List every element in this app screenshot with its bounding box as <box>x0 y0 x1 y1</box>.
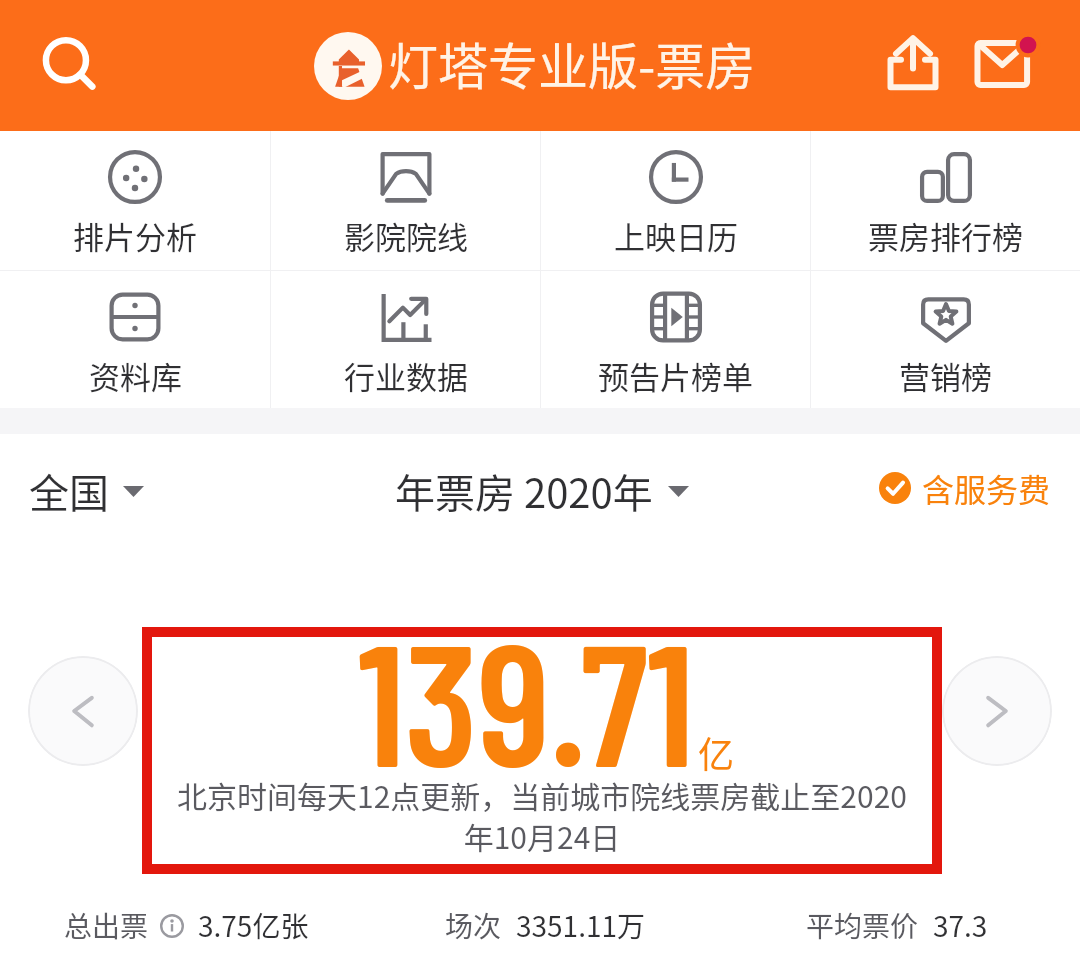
staticText: 3351.11万 <box>516 905 646 946</box>
staticText: 37.3 <box>933 905 988 946</box>
staticText: 行业数据 <box>344 353 468 398</box>
button[interactable]: Search <box>28 24 112 108</box>
button[interactable]: 票房排行榜 <box>811 131 1080 183</box>
button[interactable]: 排片分析 <box>0 131 270 183</box>
staticText: 资料库 <box>89 353 182 398</box>
staticText: 含服务费 <box>922 465 1051 511</box>
staticText: 营销榜 <box>899 353 992 398</box>
button[interactable]: 行业数据 <box>271 271 540 323</box>
button[interactable]: Previous <box>28 656 138 766</box>
staticText: 全国 <box>29 462 109 520</box>
button[interactable]: 影院院线 <box>271 131 540 183</box>
staticText: 平均票价 <box>806 905 919 946</box>
staticText: 票房排行榜 <box>868 213 1023 258</box>
button[interactable]: 场次 <box>445 905 646 946</box>
staticText: 场次 <box>445 905 502 946</box>
staticText: 3.75亿张 <box>198 905 309 946</box>
button[interactable]: 预告片榜单 <box>541 271 810 323</box>
staticText: 139.71 <box>358 596 695 801</box>
staticText: 灯塔专业版-票房 <box>388 27 756 99</box>
staticText: 排片分析 <box>73 213 197 258</box>
button[interactable]: 含服务费 <box>879 465 1051 511</box>
staticText: 亿 <box>698 726 735 778</box>
staticText: 总出票 <box>64 905 149 946</box>
button[interactable]: 全国 <box>29 462 144 520</box>
staticText: 年票房 2020年 <box>395 462 653 520</box>
staticText: 预告片榜单 <box>598 353 753 398</box>
button[interactable]: Share <box>873 23 953 103</box>
button[interactable]: 资料库 <box>0 271 270 323</box>
staticText: 影院院线 <box>344 213 468 258</box>
button[interactable]: 平均票价 <box>806 905 988 946</box>
button[interactable]: 年票房 2020年 <box>395 462 689 520</box>
button[interactable]: Messages <box>966 22 1046 102</box>
button[interactable]: Next <box>942 656 1052 766</box>
button[interactable]: 营销榜 <box>811 271 1080 323</box>
button[interactable]: 上映日历 <box>541 131 810 183</box>
staticText: 上映日历 <box>614 213 738 258</box>
staticText: 北京时间每天12点更新，当前城市院线票房截止至2020 年10月24日 <box>177 773 907 857</box>
button[interactable]: 总出票 <box>64 905 309 946</box>
